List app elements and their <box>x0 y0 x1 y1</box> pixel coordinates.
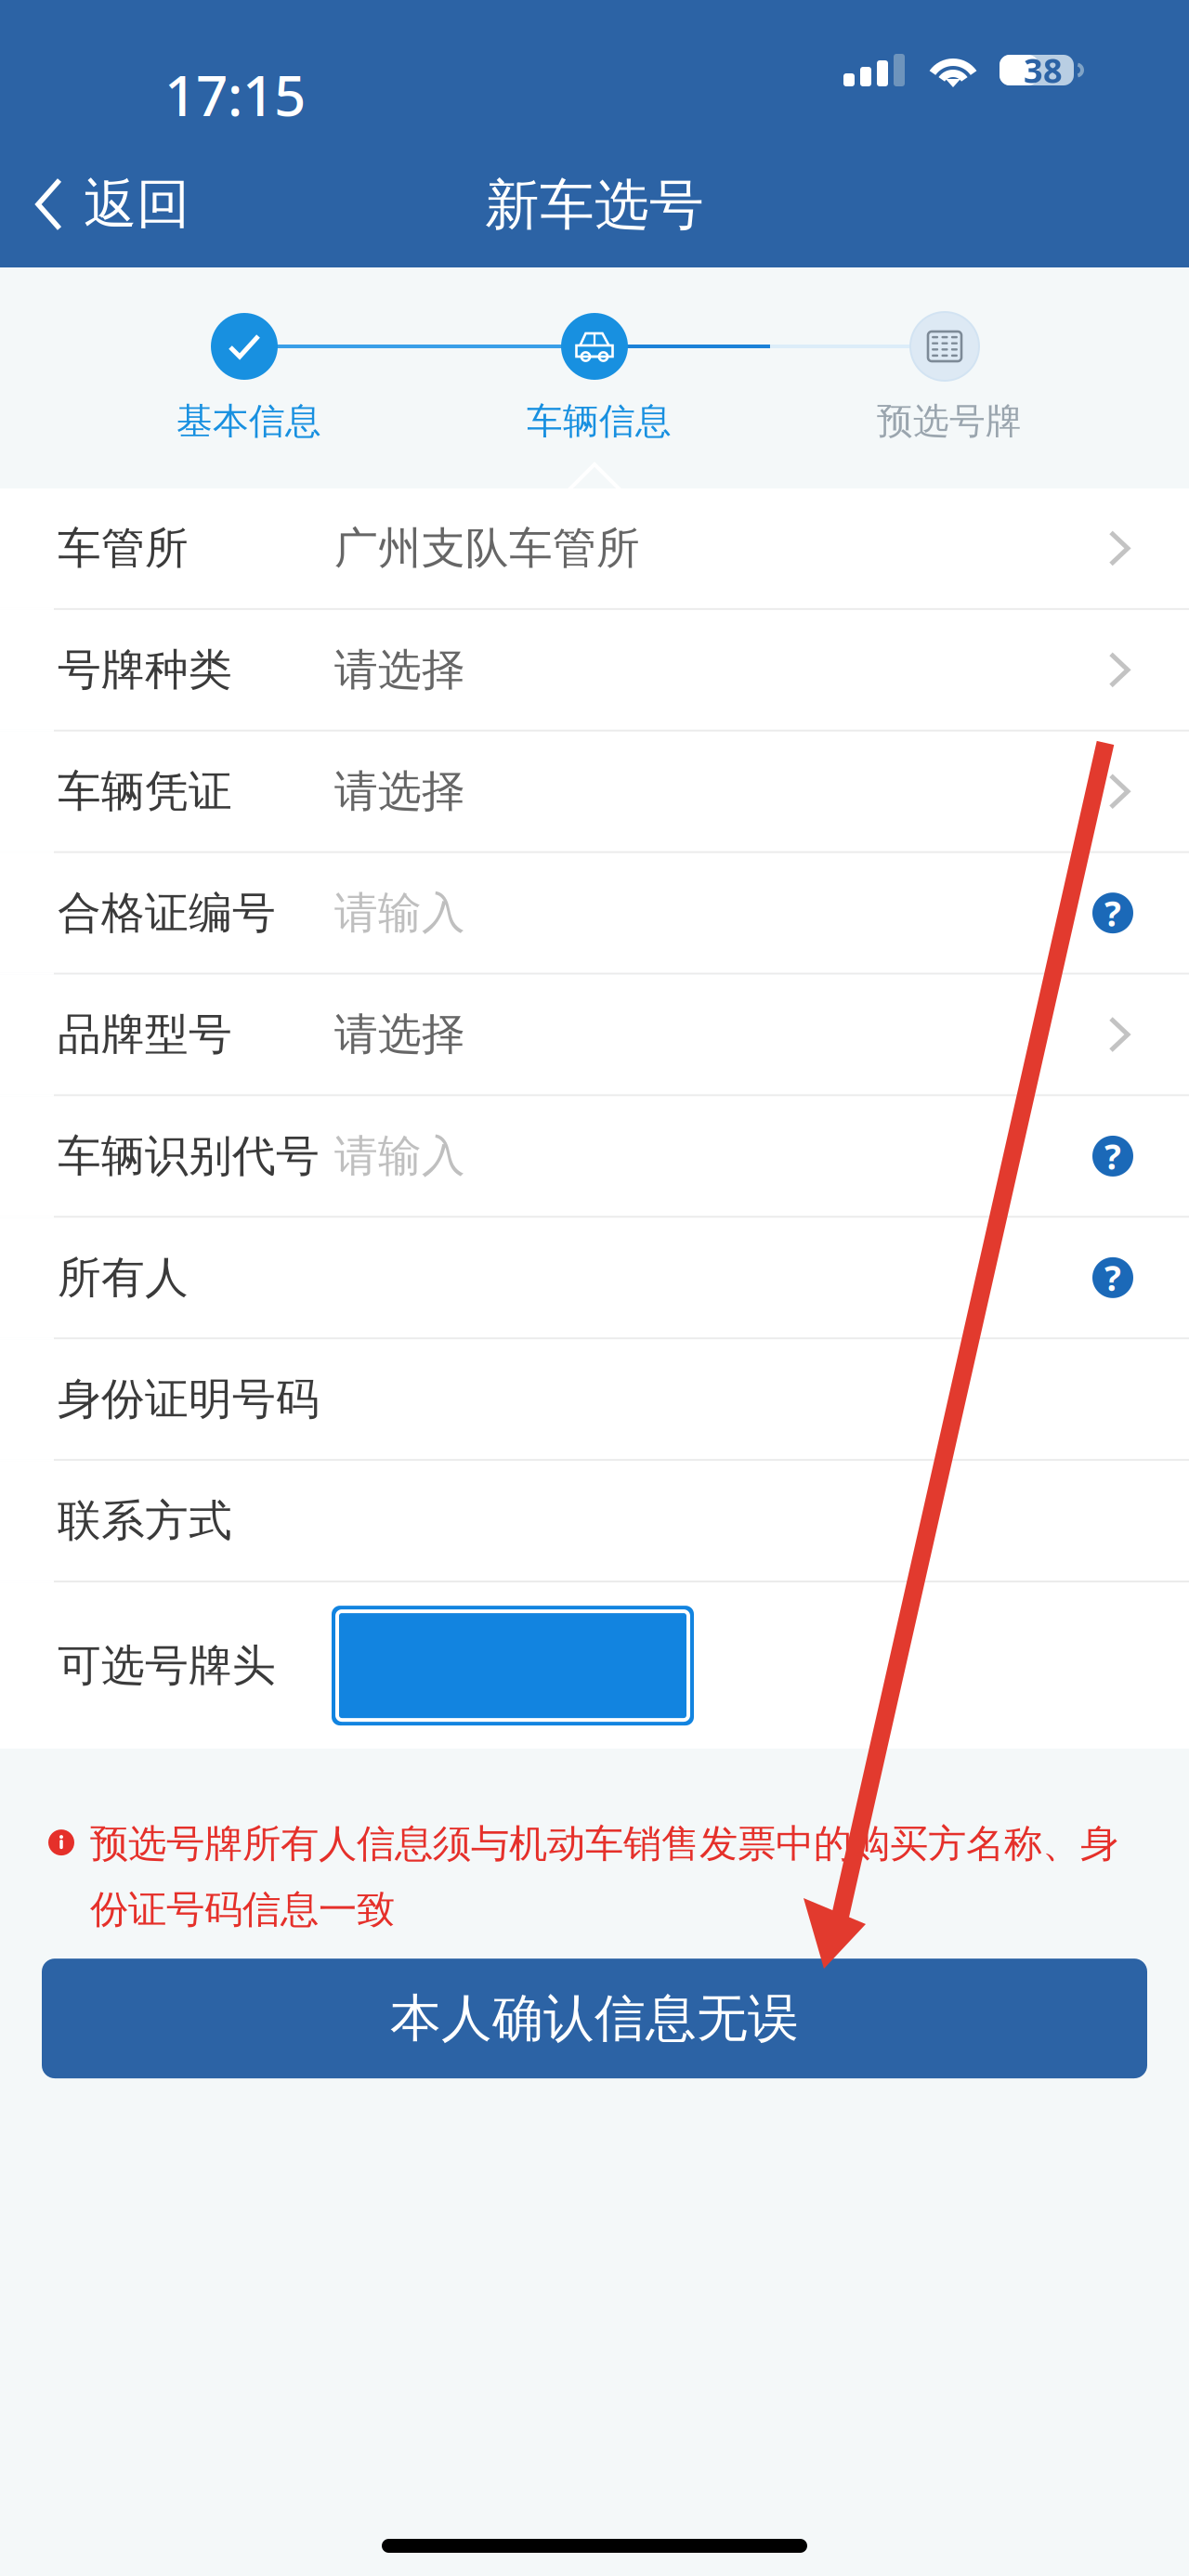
staticText: 预选号牌所有人信息须与机动车销售发票中的购买方名称、身份证号码信息一致 <box>90 1820 1118 1933</box>
staticText: 品牌型号 <box>58 1008 232 1061</box>
staticText: 车辆识别代号 <box>58 1129 320 1183</box>
staticText: 17:15 <box>164 58 306 132</box>
button[interactable]: 品牌型号 <box>0 975 1189 1094</box>
button[interactable]: 身份证明号码 <box>0 1339 1189 1459</box>
button[interactable]: 返回 <box>0 153 212 255</box>
staticText: 车管所 <box>58 522 189 575</box>
staticText: 可选号牌头 <box>58 1639 276 1692</box>
staticText: 新车选号 <box>485 172 704 239</box>
button[interactable]: 号牌种类 <box>0 610 1189 730</box>
staticText: 广州支队车管所 <box>334 522 640 575</box>
staticText: 请选择 <box>334 765 465 818</box>
button[interactable]: 所有人 <box>0 1218 1189 1337</box>
staticText: ? <box>1104 1255 1121 1301</box>
staticText: 请输入 <box>334 886 465 940</box>
staticText: 38 <box>1024 48 1063 92</box>
staticText: 车辆信息 <box>527 399 672 443</box>
staticText: 基本信息 <box>176 399 321 443</box>
staticText: 车辆凭证 <box>58 765 232 818</box>
staticText: 预选号牌 <box>877 399 1022 443</box>
button[interactable]: 车辆凭证 <box>0 732 1189 851</box>
button[interactable]: 联系方式 <box>0 1461 1189 1581</box>
staticText: 请选择 <box>334 1008 465 1061</box>
staticText: 返回 <box>84 172 189 237</box>
staticText: 身份证明号码 <box>58 1373 320 1426</box>
button[interactable]: 合格证编号 <box>0 853 1189 973</box>
staticText: 请输入 <box>334 1129 465 1183</box>
button[interactable]: 车辆识别代号 <box>0 1096 1189 1216</box>
staticText: ? <box>1104 1133 1121 1179</box>
staticText: 请选择 <box>334 643 465 696</box>
staticText: 联系方式 <box>58 1494 232 1547</box>
button[interactable]: 可选号牌头 <box>332 1606 694 1725</box>
staticText: 本人确认信息无误 <box>390 1987 799 2050</box>
button[interactable]: 本人确认信息无误 <box>42 1959 1147 2078</box>
staticText: 合格证编号 <box>58 886 276 940</box>
button[interactable]: 车管所 <box>0 488 1189 608</box>
staticText: ? <box>1104 890 1121 936</box>
staticText: 所有人 <box>58 1251 189 1304</box>
staticText: 号牌种类 <box>58 643 232 696</box>
